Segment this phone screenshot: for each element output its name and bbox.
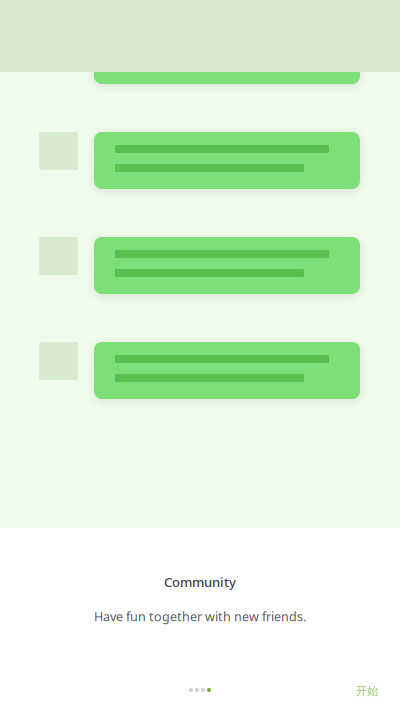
button[interactable]: Page 3 of 4 <box>201 688 205 692</box>
staticText: 开始 <box>356 684 378 698</box>
button[interactable]: 开始 <box>344 677 390 705</box>
button[interactable]: Page 1 of 4 <box>189 688 193 692</box>
staticText: Community <box>164 573 236 591</box>
button[interactable]: Page 2 of 4 <box>195 688 199 692</box>
staticText: Have fun together with new friends. <box>94 608 306 625</box>
button[interactable]: Page 4 of 4 <box>207 688 211 692</box>
